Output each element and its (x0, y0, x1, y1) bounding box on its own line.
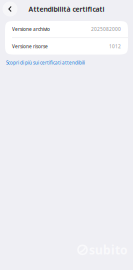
staticText: 2025082000 (91, 26, 121, 32)
staticText: 1012 (109, 43, 121, 49)
staticText: Versione risorse (12, 43, 48, 49)
staticText: Scopri di più sui certificati attendibil… (6, 59, 85, 66)
staticText: subito (89, 242, 128, 258)
staticText: Attendibilità certificati (28, 4, 104, 14)
button[interactable]: Back (2, 1, 18, 17)
button[interactable]: Scopri di più sui certificati attendibil… (0, 54, 133, 68)
staticText: Versione archivio (12, 26, 50, 32)
